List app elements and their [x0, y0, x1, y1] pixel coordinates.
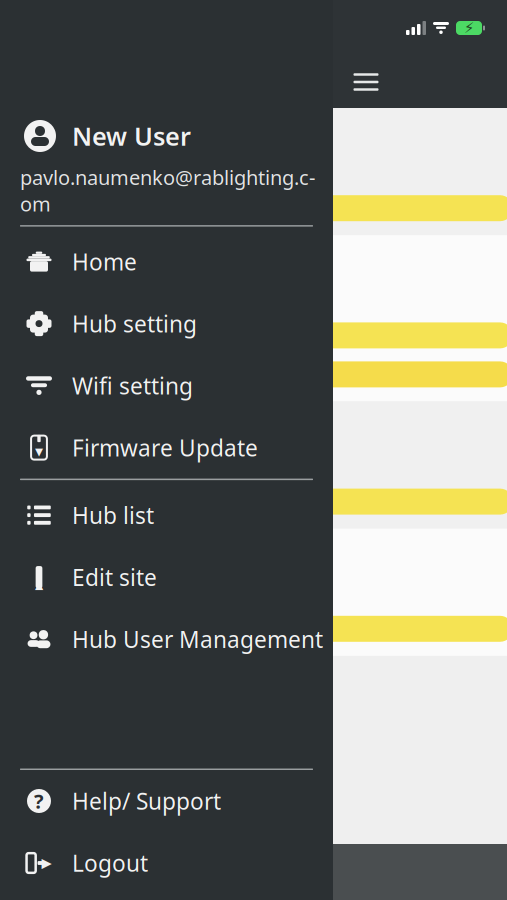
- staticText: Hub setting: [72, 309, 197, 339]
- staticText: 57%: [22, 326, 51, 345]
- staticText: 57%: [22, 198, 51, 218]
- staticText: New User: [72, 119, 191, 153]
- staticText: ?: [34, 788, 44, 814]
- staticText: ▾: [35, 442, 43, 460]
- button[interactable]: Wifi setting: [0, 355, 333, 417]
- button[interactable]: Porch: [0, 401, 507, 529]
- staticText: Wifi setting: [72, 371, 193, 401]
- staticText: 4 devices: [86, 160, 171, 186]
- staticText: pavlo.naumenko@rablighting.com: [20, 164, 315, 217]
- button[interactable]: Areas: [0, 844, 507, 900]
- button[interactable]: Home: [0, 231, 333, 293]
- staticText: Firmware Update: [72, 433, 258, 463]
- button[interactable]: Hub setting: [0, 293, 333, 355]
- staticText: Garage: [86, 545, 176, 578]
- staticText: Living Room: [86, 124, 243, 158]
- staticText: ▲: [35, 579, 43, 591]
- staticText: ⚡︎: [464, 20, 474, 36]
- staticText: Home: [72, 247, 137, 277]
- button[interactable]: Backyard: [0, 235, 507, 401]
- button[interactable]: ▾: [0, 417, 333, 479]
- staticText: 1 device: [86, 580, 161, 607]
- staticText: Help/ Support: [72, 786, 221, 816]
- button[interactable]: ?: [0, 770, 333, 832]
- staticText: 5400K: [16, 365, 57, 384]
- staticText: Logout: [72, 848, 148, 878]
- button[interactable]: Living Room: [0, 108, 507, 235]
- staticText: 50%: [22, 492, 51, 511]
- staticText: 100%: [18, 619, 55, 639]
- staticText: ▶: [41, 855, 51, 870]
- button[interactable]: Menu: [343, 60, 389, 104]
- staticText: Backyard: [86, 251, 203, 285]
- button[interactable]: ▲: [0, 546, 333, 608]
- button[interactable]: Hub list: [0, 484, 333, 546]
- button[interactable]: ▶: [0, 832, 333, 894]
- staticText: 1 device: [86, 453, 161, 480]
- staticText: Porch: [86, 417, 158, 451]
- staticText: Edit site: [72, 562, 157, 592]
- staticText: Hub list: [72, 500, 154, 530]
- staticText: Hub User Management: [72, 624, 323, 654]
- button[interactable]: New User: [0, 108, 333, 164]
- button[interactable]: Hub User Management: [0, 608, 333, 670]
- button[interactable]: Garage: [0, 529, 507, 656]
